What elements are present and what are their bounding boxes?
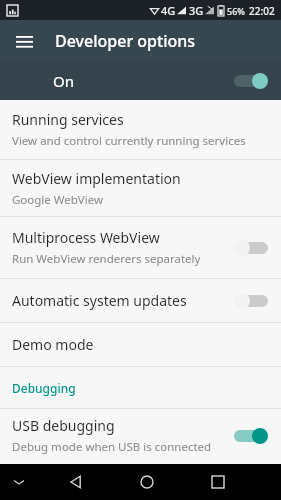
button[interactable]: Back	[40, 464, 111, 500]
staticText: 4G	[161, 3, 176, 18]
staticText: Demo mode	[12, 335, 94, 354]
button[interactable]: Switch on	[234, 426, 268, 446]
staticText: 22:02	[249, 4, 275, 18]
button[interactable]: Recent apps	[182, 464, 253, 500]
button[interactable]: Switch off	[234, 291, 268, 311]
staticText: Developer options	[55, 30, 196, 52]
staticText: On	[53, 71, 234, 91]
staticText: Google WebView	[12, 192, 103, 208]
staticText: Run WebView renderers separately	[12, 251, 201, 267]
button[interactable]: Demo mode	[0, 323, 281, 366]
staticText: View and control currently running servi…	[12, 133, 246, 149]
button[interactable]: Home	[111, 464, 182, 500]
staticText: USB debugging	[12, 416, 115, 435]
staticText: 56%	[227, 5, 245, 17]
staticText: Multiprocess WebView	[12, 228, 160, 247]
button[interactable]: WebView implementation	[0, 160, 281, 216]
button[interactable]: Switch on	[234, 71, 268, 91]
staticText: Running services	[12, 110, 124, 129]
staticText: Automatic system updates	[12, 291, 187, 310]
button[interactable]: Hide navigation bar	[5, 468, 33, 496]
button[interactable]: Open navigation drawer	[0, 20, 48, 62]
button[interactable]: Multiprocess WebView	[0, 217, 281, 278]
staticText: WebView implementation	[12, 169, 181, 188]
staticText: Debug mode when USB is connected	[12, 439, 212, 455]
staticText: Debugging	[12, 380, 76, 396]
button[interactable]: Switch off	[234, 238, 268, 258]
button[interactable]: Automatic system updates	[0, 279, 281, 322]
button[interactable]: On	[0, 62, 281, 100]
staticText: 3G	[189, 3, 204, 18]
button[interactable]: Running services	[0, 100, 281, 159]
button[interactable]: USB debugging	[0, 409, 281, 462]
